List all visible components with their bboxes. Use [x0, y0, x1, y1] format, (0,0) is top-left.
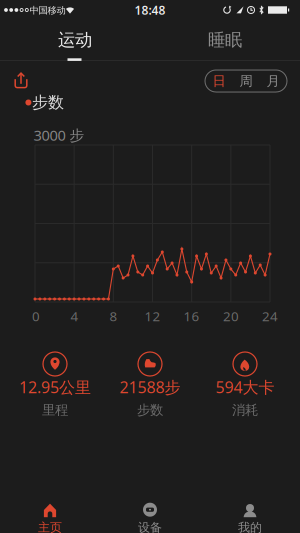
staticText: 21588步 — [119, 376, 180, 398]
staticText: 18:48 — [134, 2, 165, 18]
button[interactable]: 睡眠 — [150, 21, 300, 59]
button[interactable]: 运动 — [0, 21, 150, 59]
staticText: 日 — [212, 73, 225, 89]
staticText: 月 — [266, 73, 279, 89]
button[interactable]: 月 — [259, 70, 286, 92]
button[interactable]: 周 — [232, 70, 259, 92]
staticText: 周 — [239, 73, 252, 89]
staticText: 24 — [262, 307, 278, 325]
button[interactable]: 主页 — [0, 485, 100, 533]
staticText: 3000 步 — [33, 125, 84, 145]
staticText: 中国移动 — [29, 5, 65, 16]
staticText: 8 — [109, 307, 117, 325]
button[interactable]: 我的 — [200, 485, 300, 533]
button[interactable]: 设备 — [100, 485, 200, 533]
staticText: 12 — [144, 307, 160, 325]
staticText: 步数 — [32, 93, 64, 112]
staticText: 我的 — [238, 520, 262, 533]
staticText: 主页 — [38, 520, 62, 533]
staticText: 0 — [32, 307, 40, 325]
staticText: 消耗 — [232, 402, 258, 418]
button[interactable]: Share — [0, 0, 300, 533]
staticText: 运动 — [58, 29, 92, 51]
staticText: 步数 — [137, 402, 163, 418]
staticText: 里程 — [42, 402, 68, 418]
staticText: 4 — [70, 307, 78, 325]
staticText: 20 — [223, 307, 239, 325]
button[interactable]: 日 — [205, 70, 232, 92]
staticText: 睡眠 — [208, 29, 242, 51]
staticText: 16 — [183, 307, 199, 325]
staticText: 12.95公里 — [19, 376, 91, 398]
staticText: 594大卡 — [215, 376, 274, 398]
staticText: 设备 — [138, 520, 162, 533]
